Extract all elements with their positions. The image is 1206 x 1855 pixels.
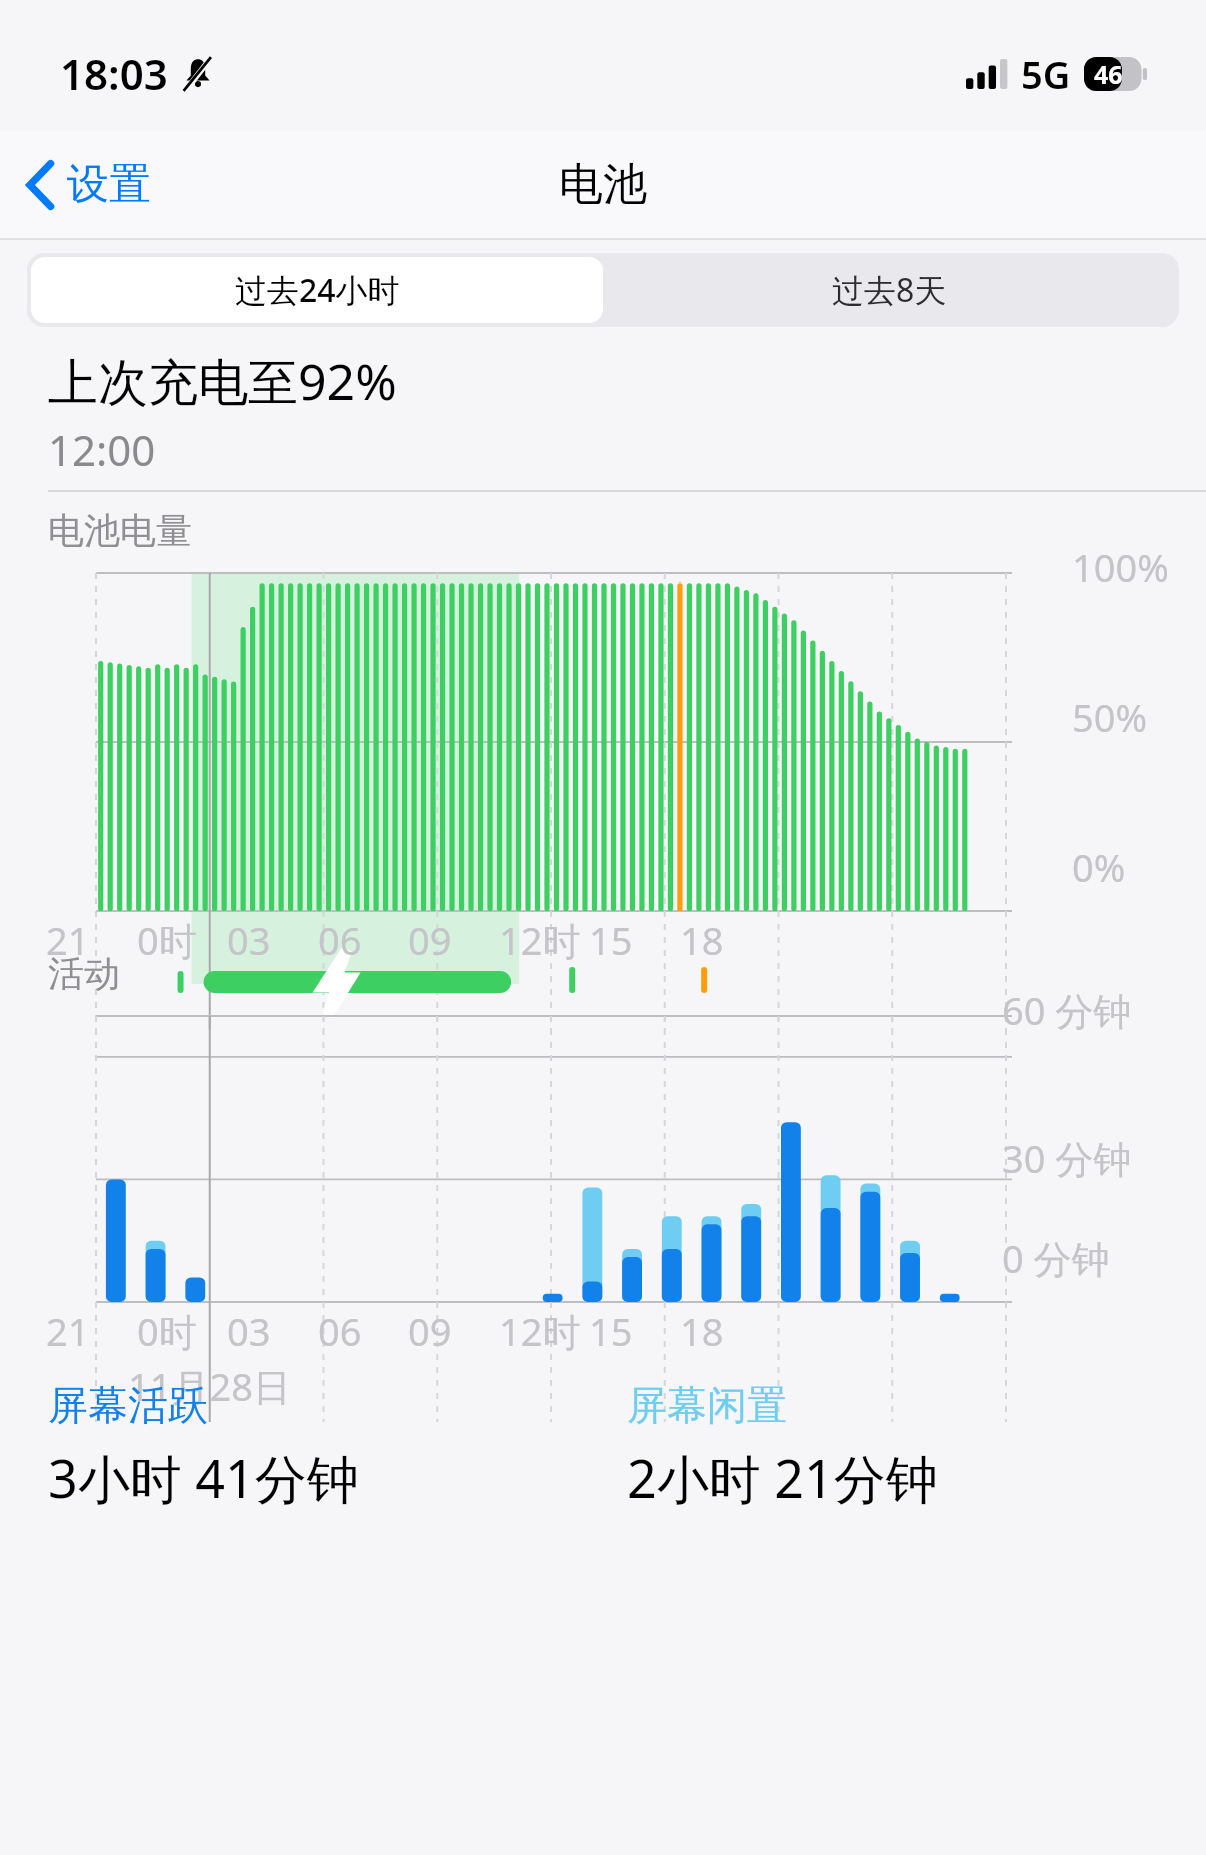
staticText: 12时 <box>499 914 581 966</box>
button[interactable]: 过去8天 <box>603 257 1175 323</box>
staticText: 21 <box>46 1305 90 1357</box>
staticText: 06 <box>318 1305 362 1357</box>
staticText: 电池电量 <box>48 508 192 553</box>
staticText: 过去8天 <box>832 268 947 312</box>
staticText: 50% <box>1072 691 1148 743</box>
staticText: 活动 <box>48 951 120 996</box>
staticText: 2小时 21分钟 <box>627 1442 938 1513</box>
staticText: 46 <box>1094 57 1123 91</box>
staticText: 屏幕闲置 <box>627 1380 787 1430</box>
staticText: 12:00 <box>48 421 156 478</box>
staticText: 屏幕活跃 <box>48 1380 208 1430</box>
staticText: 30 分钟 <box>1002 1132 1132 1184</box>
staticText: 03 <box>227 914 271 966</box>
staticText: 18 <box>680 914 724 966</box>
staticText: 06 <box>318 914 362 966</box>
staticText: 100% <box>1072 541 1169 593</box>
staticText: 3小时 41分钟 <box>48 1442 359 1513</box>
staticText: 过去24小时 <box>235 268 400 312</box>
staticText: 电池 <box>559 157 647 212</box>
staticText: 5G <box>1021 48 1071 100</box>
staticText: 11月28日 <box>128 1360 291 1412</box>
staticText: 18 <box>680 1305 724 1357</box>
staticText: 0% <box>1072 841 1126 893</box>
staticText: 0 分钟 <box>1002 1232 1110 1284</box>
button[interactable]: 过去24小时 <box>31 257 603 323</box>
staticText: 12时 <box>499 1305 581 1357</box>
staticText: 设置 <box>67 158 151 211</box>
staticText: 上次充电至92% <box>48 347 397 415</box>
staticText: 09 <box>408 1305 452 1357</box>
staticText: 15 <box>589 1305 633 1357</box>
staticText: 03 <box>227 1305 271 1357</box>
staticText: 0时 <box>137 1305 197 1357</box>
staticText: 18:03 <box>60 45 168 102</box>
staticText: 15 <box>589 914 633 966</box>
staticText: 0时 <box>137 914 197 966</box>
staticText: 09 <box>408 914 452 966</box>
staticText: 21 <box>46 914 90 966</box>
staticText: 60 分钟 <box>1002 984 1132 1036</box>
button[interactable]: 设置 <box>0 146 171 223</box>
